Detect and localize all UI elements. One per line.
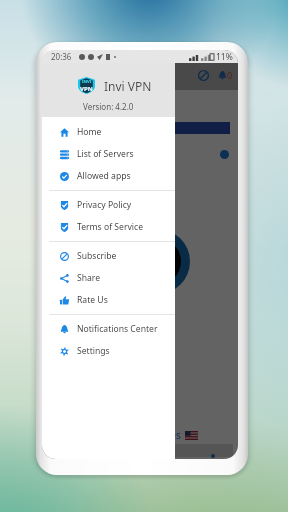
staticText: Notifications Center <box>77 323 158 335</box>
button[interactable]: Notifications Center <box>42 318 175 340</box>
button[interactable]: Subscribe <box>42 245 175 267</box>
button[interactable]: Home <box>42 121 175 143</box>
staticText: Share <box>77 272 101 284</box>
staticText: Home <box>77 126 102 138</box>
staticText: VPN <box>80 85 93 93</box>
staticText: Settings <box>77 345 110 357</box>
button[interactable]: Rate Us <box>42 289 175 311</box>
staticText: Invi VPN <box>104 78 152 94</box>
staticText: Subscribe <box>77 250 117 262</box>
button[interactable]: Settings <box>42 340 175 362</box>
button[interactable]: Share <box>42 267 175 289</box>
staticText: 20:36 <box>51 51 72 62</box>
button[interactable]: Allowed apps <box>42 165 175 187</box>
button[interactable]: List of Servers <box>42 143 175 165</box>
button[interactable]: Terms of Service <box>42 216 175 238</box>
staticText: Allowed apps <box>77 170 131 182</box>
staticText: List of Servers <box>77 148 134 160</box>
staticText: States <box>152 428 181 442</box>
staticText: INVI <box>82 79 92 85</box>
staticText: 11% <box>216 51 233 63</box>
staticText: Terms of Service <box>77 221 144 233</box>
staticText: 0 <box>227 69 233 81</box>
staticText: Rate Us <box>77 294 108 306</box>
staticText: Version: 4.2.0 <box>83 101 134 112</box>
button[interactable]: Privacy Policy <box>42 194 175 216</box>
staticText: Privacy Policy <box>77 199 132 211</box>
